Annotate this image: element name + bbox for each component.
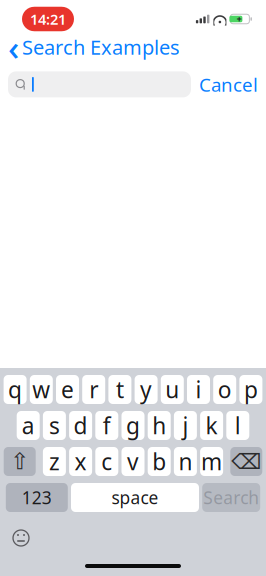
staticText: Search Examples (22, 34, 180, 60)
button[interactable]: Delete (230, 447, 262, 476)
staticText: f (103, 410, 111, 440)
button[interactable]: h (148, 411, 171, 440)
staticText: r (89, 374, 98, 404)
button[interactable]: x (69, 447, 92, 476)
button[interactable]: r (82, 375, 105, 404)
staticText: z (49, 446, 60, 476)
button[interactable]: g (121, 411, 144, 440)
staticText: m (201, 446, 222, 476)
button[interactable]: c (95, 447, 118, 476)
button[interactable]: o (213, 375, 236, 404)
staticText: t (116, 374, 124, 404)
button[interactable]: Shift (4, 447, 36, 476)
staticText: e (61, 374, 74, 404)
button[interactable]: Search (202, 483, 260, 512)
button[interactable]: l (226, 411, 249, 440)
staticText: s (49, 410, 60, 440)
staticText: l (235, 410, 241, 440)
button[interactable]: p (239, 375, 262, 404)
button[interactable]: j (174, 411, 197, 440)
staticText: q (8, 374, 22, 404)
staticText: + (236, 13, 241, 25)
staticText: h (152, 410, 166, 440)
button[interactable]: y (135, 375, 158, 404)
button[interactable]: k (200, 411, 223, 440)
button[interactable]: d (69, 411, 92, 440)
staticText: v (127, 446, 139, 476)
staticText: Search (203, 486, 259, 509)
staticText: 14:21 (30, 9, 66, 29)
staticText: Cancel (199, 72, 258, 97)
staticText: b (152, 446, 166, 476)
button[interactable]: a (17, 411, 40, 440)
staticText: a (22, 410, 35, 440)
staticText: y (140, 374, 152, 404)
staticText: c (101, 446, 112, 476)
staticText: d (74, 410, 88, 440)
button[interactable]: Cancel (199, 68, 266, 101)
button[interactable]: w (30, 375, 53, 404)
button[interactable]: f (95, 411, 118, 440)
staticText: ⇧ (10, 449, 29, 474)
button[interactable]: i (187, 375, 210, 404)
staticText: space (111, 486, 158, 509)
staticText: p (244, 374, 258, 404)
staticText: g (126, 410, 140, 440)
staticText: n (178, 446, 192, 476)
button[interactable]: b (148, 447, 171, 476)
staticText: x (75, 446, 87, 476)
button[interactable]: Emoji (0, 523, 30, 553)
button[interactable]: space (71, 483, 199, 512)
button[interactable]: u (161, 375, 184, 404)
staticText: ⌫ (231, 449, 261, 474)
staticText: 123 (22, 486, 52, 509)
button[interactable]: t (108, 375, 131, 404)
button[interactable]: 123 (6, 483, 68, 512)
staticText: o (218, 374, 232, 404)
button[interactable]: s (43, 411, 66, 440)
staticText: ‹ (8, 24, 19, 70)
button[interactable]: z (43, 447, 66, 476)
staticText: w (32, 374, 50, 404)
staticText: k (206, 410, 218, 440)
staticText: j (182, 410, 188, 440)
staticText: u (165, 374, 179, 404)
button[interactable]: q (4, 375, 27, 404)
button[interactable]: v (121, 447, 144, 476)
button[interactable]: n (174, 447, 197, 476)
staticText: i (195, 374, 201, 404)
button[interactable]: ‹ (0, 20, 180, 74)
button[interactable]: e (56, 375, 79, 404)
button[interactable]: m (200, 447, 223, 476)
